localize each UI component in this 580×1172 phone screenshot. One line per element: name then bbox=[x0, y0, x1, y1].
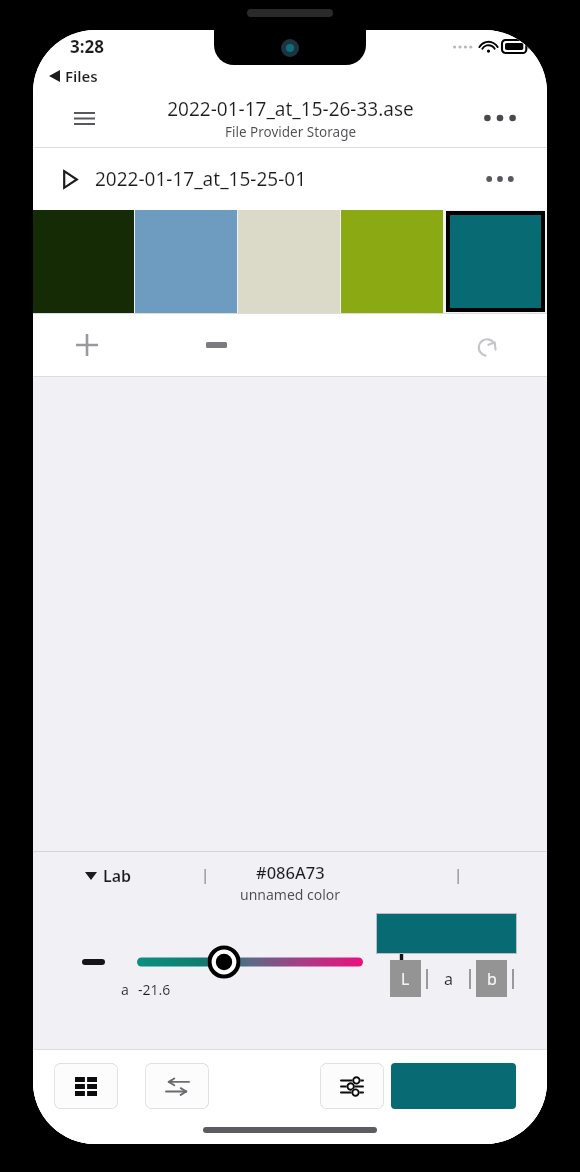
button[interactable]: a bbox=[433, 960, 464, 997]
button[interactable]: Menu bbox=[66, 100, 102, 136]
staticText: 3:28 bbox=[70, 35, 104, 58]
button[interactable]: b bbox=[476, 960, 507, 997]
button[interactable]: 2022-01-17_at_15-25-01 bbox=[63, 166, 307, 192]
button[interactable]: Swap colors bbox=[145, 1063, 209, 1109]
button[interactable]: Adjustments bbox=[320, 1063, 384, 1109]
button[interactable]: a channel slider bbox=[137, 944, 363, 980]
staticText: #086A73 bbox=[256, 861, 325, 883]
staticText: 2022-01-17_at_15-25-01 bbox=[95, 166, 307, 192]
button[interactable]: Lab bbox=[85, 865, 132, 887]
staticText: a bbox=[121, 980, 129, 999]
staticText: File Provider Storage bbox=[225, 123, 357, 141]
staticText: unnamed color bbox=[240, 885, 341, 904]
button[interactable]: Add color bbox=[65, 323, 109, 367]
button[interactable]: Group options bbox=[481, 160, 519, 198]
button[interactable]: Undo bbox=[467, 323, 511, 367]
staticText: L bbox=[401, 968, 410, 990]
staticText: Lab bbox=[103, 865, 132, 887]
button[interactable]: Increase bbox=[381, 942, 421, 982]
button[interactable]: Grid view bbox=[54, 1063, 118, 1109]
button[interactable]: Apply color bbox=[391, 1063, 516, 1109]
staticText: | bbox=[454, 864, 463, 884]
staticText: b bbox=[487, 968, 497, 990]
staticText: | bbox=[201, 864, 210, 884]
button[interactable]: L bbox=[390, 960, 421, 997]
staticText: Files bbox=[65, 66, 98, 86]
button[interactable]: More options bbox=[481, 99, 519, 137]
button[interactable]: Decrease bbox=[73, 942, 113, 982]
button[interactable]: Files bbox=[33, 62, 547, 89]
staticText: a bbox=[444, 968, 453, 990]
button[interactable]: Remove color bbox=[194, 323, 238, 367]
staticText: 2022-01-17_at_15-26-33.ase bbox=[167, 96, 414, 122]
staticText: -21.6 bbox=[138, 980, 171, 999]
